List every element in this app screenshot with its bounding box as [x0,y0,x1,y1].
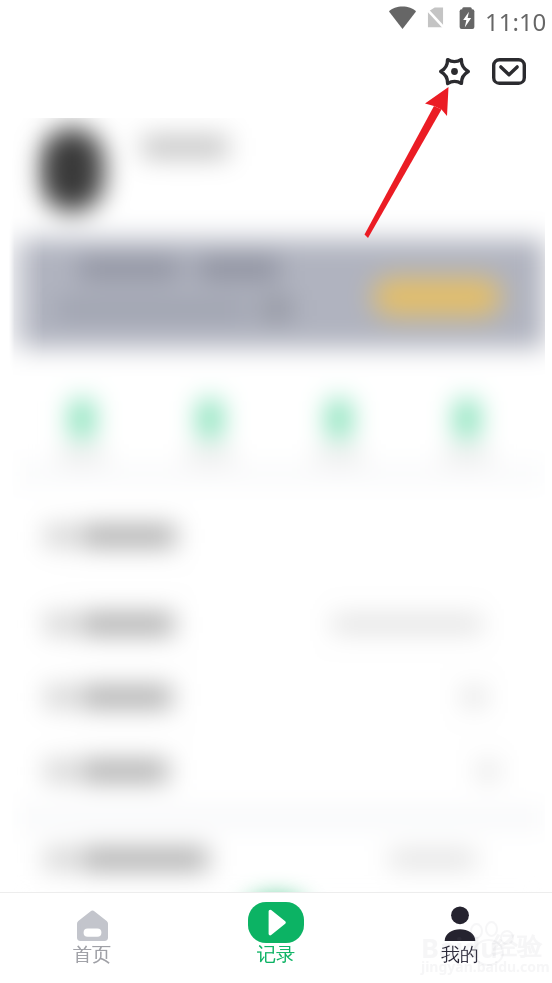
button[interactable]: Settings [430,47,478,95]
staticText: 首页 [32,943,152,967]
staticText: 11:10 [485,5,547,38]
staticText: 经验 [492,931,542,962]
staticText: 我的 [400,943,520,967]
staticText: 记录 [216,943,336,967]
button[interactable]: 我的 [400,893,520,983]
button[interactable]: Messages [485,47,533,95]
staticText: jingyan.baidu.com [421,957,550,976]
staticText: Baidu [421,929,498,966]
button[interactable]: 记录 [216,893,336,983]
button[interactable]: 首页 [32,893,152,983]
